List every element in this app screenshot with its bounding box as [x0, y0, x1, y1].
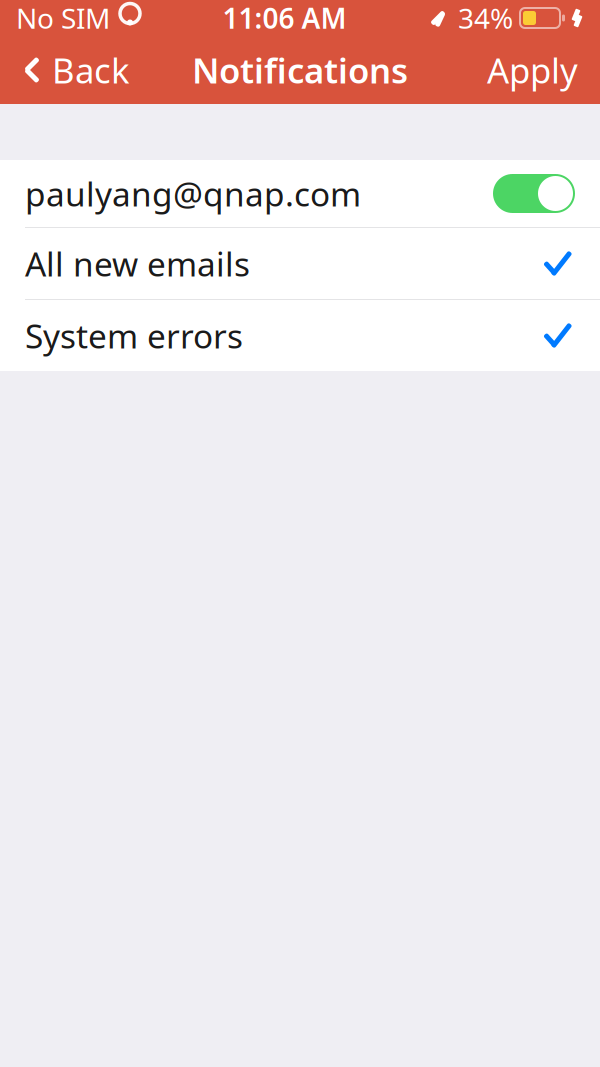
staticText: Apply — [487, 47, 578, 93]
staticText: paulyang@qnap.com — [25, 171, 361, 216]
staticText: All new emails — [25, 241, 250, 286]
button[interactable]: System errors — [0, 300, 600, 371]
staticText: Back — [52, 47, 130, 93]
staticText: System errors — [25, 313, 243, 358]
staticText: 34% — [458, 0, 513, 37]
staticText: No SIM — [16, 0, 110, 37]
button[interactable]: paulyang@qnap.com — [0, 160, 600, 227]
button[interactable]: All new emails — [0, 228, 600, 299]
button[interactable]: Apply — [465, 36, 600, 104]
staticText: Notifications — [192, 47, 408, 93]
staticText: 11:06 AM — [222, 0, 346, 37]
button[interactable]: Back — [0, 36, 152, 104]
